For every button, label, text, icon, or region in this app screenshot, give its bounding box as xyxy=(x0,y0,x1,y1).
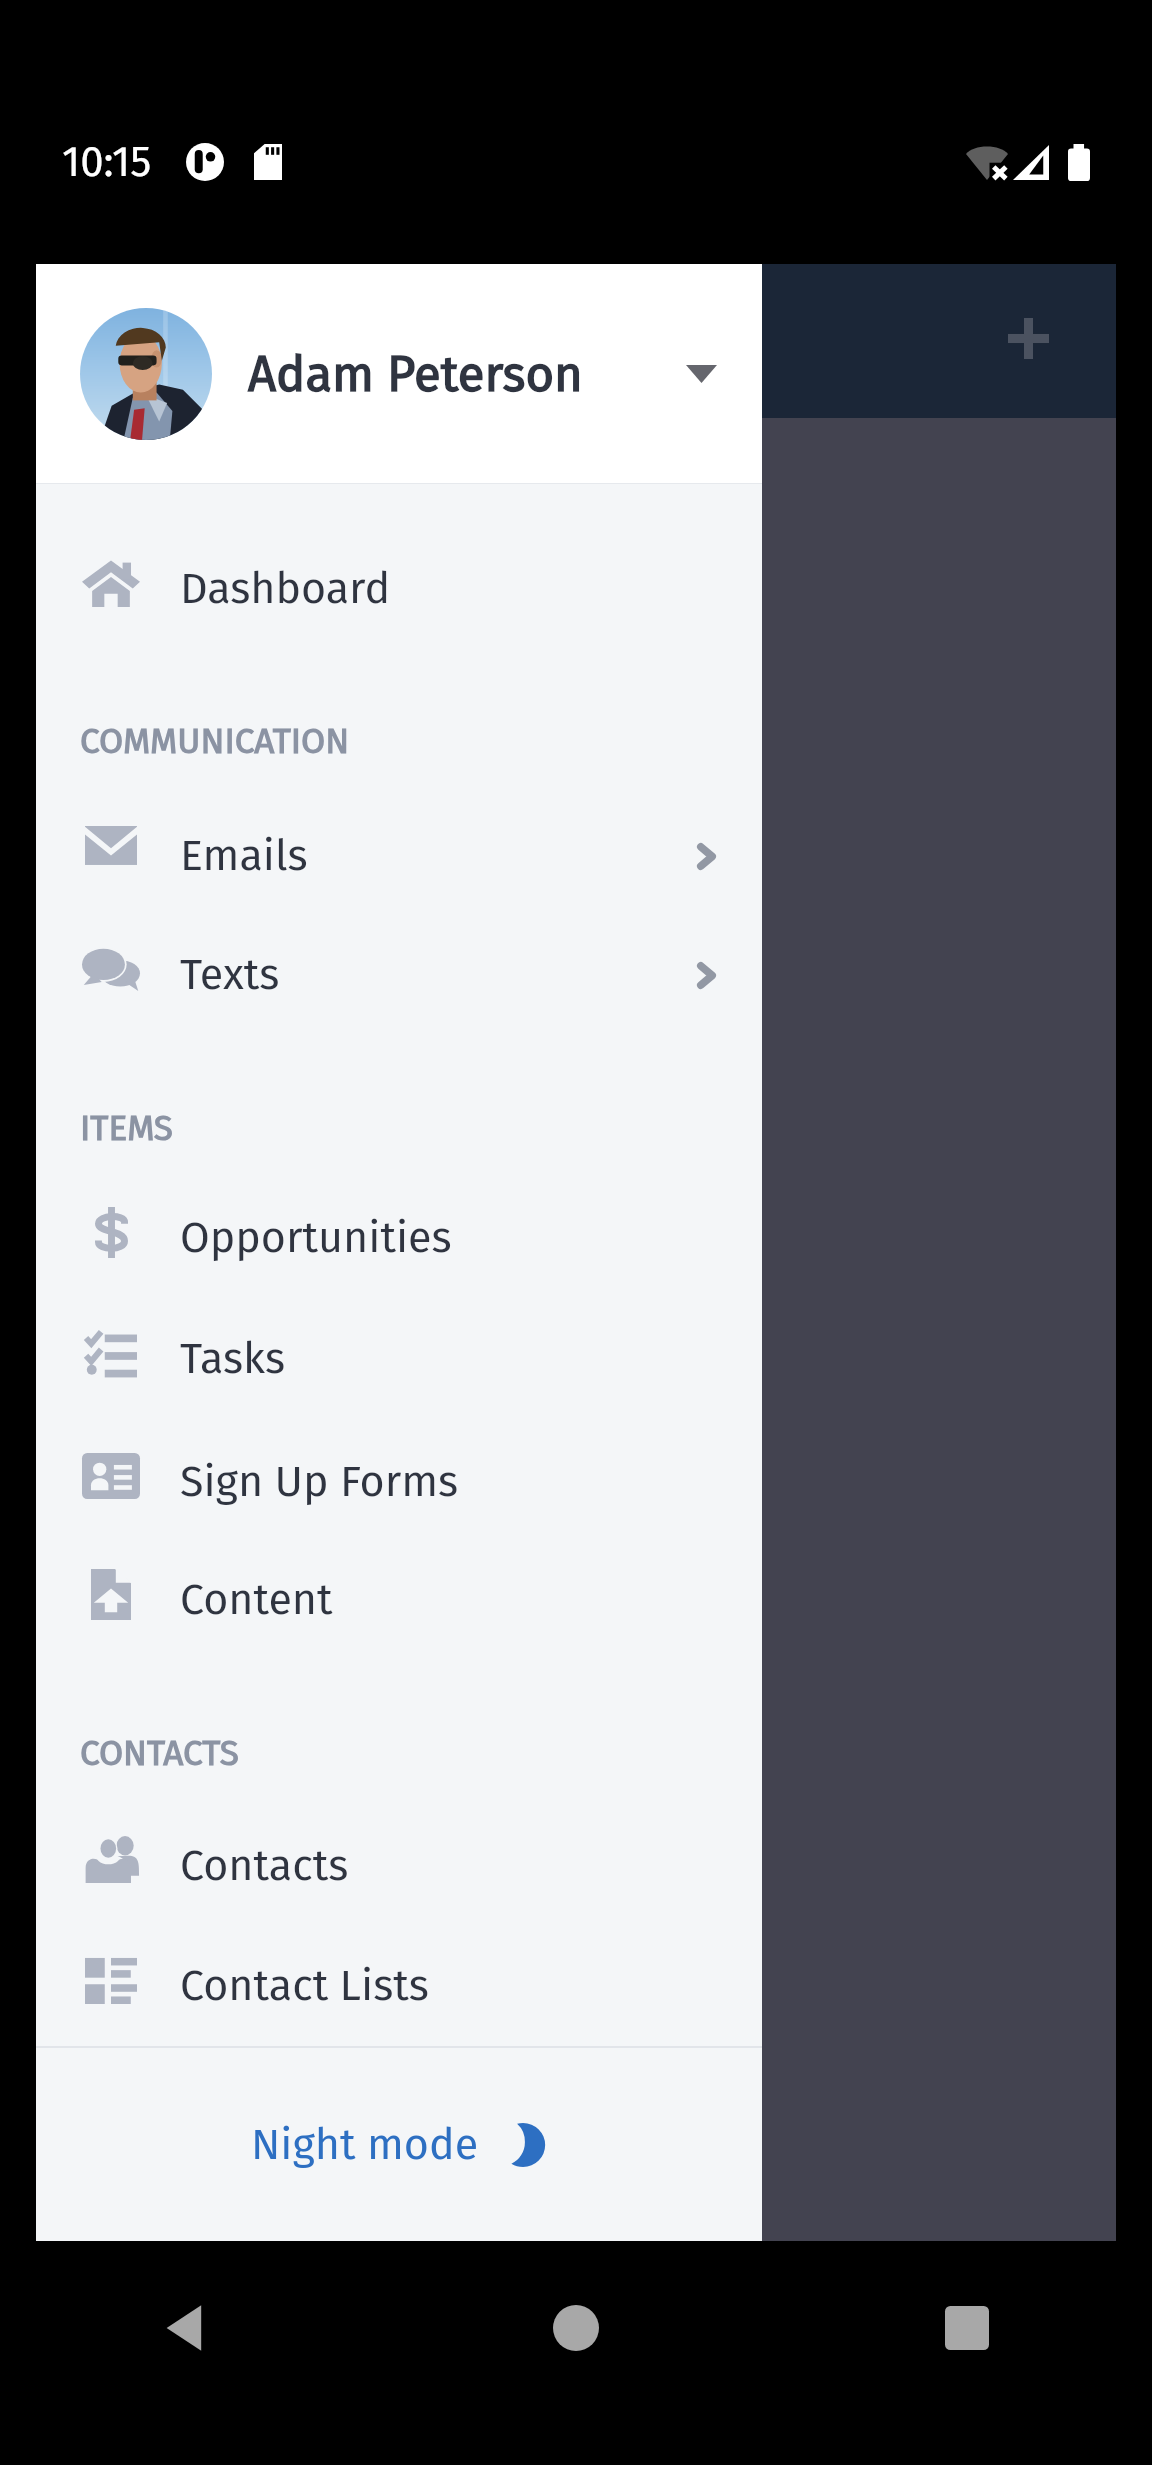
button[interactable]: Contact Lists xyxy=(36,1925,762,2047)
button[interactable]: Emails xyxy=(36,795,762,917)
button[interactable]: Sign Up Forms xyxy=(36,1421,762,1543)
staticText: Sign Up Forms xyxy=(180,1456,459,1508)
button[interactable]: Texts xyxy=(36,914,762,1036)
staticText: COMMUNICATION xyxy=(80,720,350,762)
staticText: Night mode xyxy=(251,2119,479,2171)
button[interactable]: Opportunities xyxy=(36,1177,762,1299)
button[interactable]: Add xyxy=(984,294,1072,382)
button[interactable]: Home xyxy=(531,2283,621,2373)
button[interactable]: Content xyxy=(36,1539,762,1661)
button[interactable]: Recent apps xyxy=(922,2283,1012,2373)
staticText: Opportunities xyxy=(180,1212,452,1264)
staticText: Adam Peterson xyxy=(248,345,583,404)
staticText: Tasks xyxy=(180,1333,286,1385)
button[interactable]: Dashboard xyxy=(36,528,762,650)
button[interactable]: Adam Peterson xyxy=(36,264,762,484)
staticText: 10:15 xyxy=(62,137,152,187)
staticText: ITEMS xyxy=(80,1107,173,1149)
button[interactable]: Back xyxy=(140,2283,230,2373)
staticText: Content xyxy=(180,1574,333,1626)
staticText: Contacts xyxy=(180,1840,349,1892)
staticText: CONTACTS xyxy=(80,1732,239,1774)
staticText: Texts xyxy=(180,949,280,1001)
staticText: Emails xyxy=(180,830,308,882)
button[interactable]: Night mode xyxy=(36,2048,762,2241)
button[interactable]: Tasks xyxy=(36,1298,762,1420)
staticText: Dashboard xyxy=(180,563,391,615)
staticText: Contact Lists xyxy=(180,1960,429,2012)
button[interactable]: Contacts xyxy=(36,1805,762,1927)
